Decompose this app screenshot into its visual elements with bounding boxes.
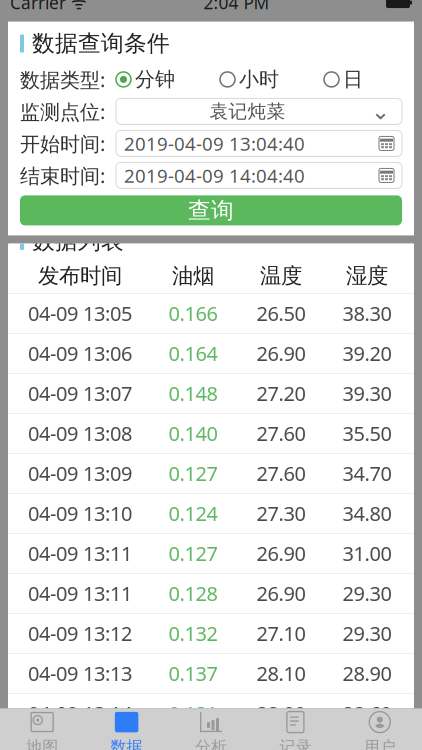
staticText: 04-09 13:06	[28, 340, 132, 367]
button[interactable]: 袁记炖菜	[116, 98, 402, 124]
button[interactable]: 2019-04-09 13:04:40	[116, 130, 402, 156]
staticText: 数据查询条件	[32, 30, 170, 57]
staticText: 0.164	[168, 340, 217, 367]
staticText: 数据类型:	[20, 66, 105, 93]
staticText: 26.90	[256, 540, 305, 567]
staticText: 小时	[239, 67, 279, 92]
staticText: 31.00	[342, 540, 391, 567]
staticText: 数据列表	[32, 227, 124, 255]
staticText: ⌄	[371, 99, 390, 124]
staticText: 04-09 13:07	[28, 380, 132, 407]
staticText: 04-09 13:05	[28, 300, 132, 327]
staticText: 28.00	[256, 700, 305, 727]
staticText: 35.50	[342, 420, 391, 447]
staticText: 油烟	[172, 263, 214, 289]
button[interactable]: 用户	[338, 708, 422, 750]
staticText: ᯤ	[66, 0, 87, 14]
staticText: 湿度	[346, 263, 388, 289]
button[interactable]: 记录	[253, 708, 338, 750]
staticText: 2019-04-09 14:04:40	[124, 163, 305, 188]
staticText: 04-09 13:12	[28, 620, 132, 647]
staticText: 04-09 13:11	[28, 580, 132, 607]
staticText: 0.166	[168, 300, 217, 327]
staticText: 2:04 PM	[203, 0, 269, 14]
button[interactable]: 查询	[20, 195, 402, 225]
staticText: 查询	[188, 196, 234, 224]
staticText: 监测点位:	[20, 98, 105, 125]
staticText: 开始时间:	[20, 130, 105, 157]
staticText: 27.60	[256, 420, 305, 447]
staticText: 日	[343, 67, 363, 92]
staticText: 0.132	[168, 620, 217, 647]
staticText: 数据	[111, 737, 143, 750]
staticText: 27.20	[256, 380, 305, 407]
staticText: 34.80	[342, 500, 391, 527]
staticText: 记录	[279, 737, 311, 750]
staticText: 28.10	[256, 660, 305, 687]
staticText: 0.127	[168, 460, 217, 487]
staticText: 28.90	[342, 660, 391, 687]
staticText: 27.60	[256, 460, 305, 487]
staticText: 分钟	[135, 67, 175, 92]
staticText: 0.128	[168, 580, 217, 607]
button[interactable]: 小时	[220, 67, 279, 92]
staticText: 2019-04-09 13:04:40	[124, 131, 305, 156]
staticText: 0.131	[168, 700, 217, 727]
staticText: 29.30	[342, 580, 391, 607]
staticText: 发布时间	[38, 263, 122, 289]
button[interactable]: 地图	[0, 708, 84, 750]
button[interactable]: 日	[324, 67, 363, 92]
staticText: 04-09 13:09	[28, 460, 132, 487]
staticText: 39.20	[342, 340, 391, 367]
staticText: 04-09 13:11	[28, 540, 132, 567]
staticText: 04-09 13:08	[28, 420, 132, 447]
staticText: 结束时间:	[20, 162, 105, 189]
staticText: 0.127	[168, 540, 217, 567]
staticText: 地图	[26, 737, 58, 750]
button[interactable]: 2019-04-09 14:04:40	[116, 162, 402, 188]
staticText: 39.30	[342, 380, 391, 407]
staticText: 29.30	[342, 620, 391, 647]
staticText: 34.70	[342, 460, 391, 487]
staticText: 26.90	[256, 340, 305, 367]
staticText: 温度	[260, 263, 302, 289]
staticText: 分析	[195, 737, 227, 750]
staticText: 04-09 13:10	[28, 500, 132, 527]
staticText: 用户	[364, 737, 396, 750]
staticText: 04-09 13:13	[28, 660, 132, 687]
staticText: 38.30	[342, 300, 391, 327]
staticText: 26.90	[256, 580, 305, 607]
staticText: 0.140	[168, 420, 217, 447]
staticText: 26.50	[256, 300, 305, 327]
staticText: 袁记炖菜	[209, 100, 285, 123]
staticText: 0.124	[168, 500, 217, 527]
button[interactable]: 数据	[84, 708, 169, 750]
staticText: 0.137	[168, 660, 217, 687]
button[interactable]: 分钟	[116, 67, 175, 92]
staticText: 28.60	[342, 700, 391, 727]
button[interactable]: 分析	[169, 708, 253, 750]
staticText: 04-09 13:14	[28, 700, 132, 727]
staticText: 27.30	[256, 500, 305, 527]
staticText: 0.148	[168, 380, 217, 407]
staticText: 27.10	[256, 620, 305, 647]
staticText: Carrier	[10, 0, 66, 14]
